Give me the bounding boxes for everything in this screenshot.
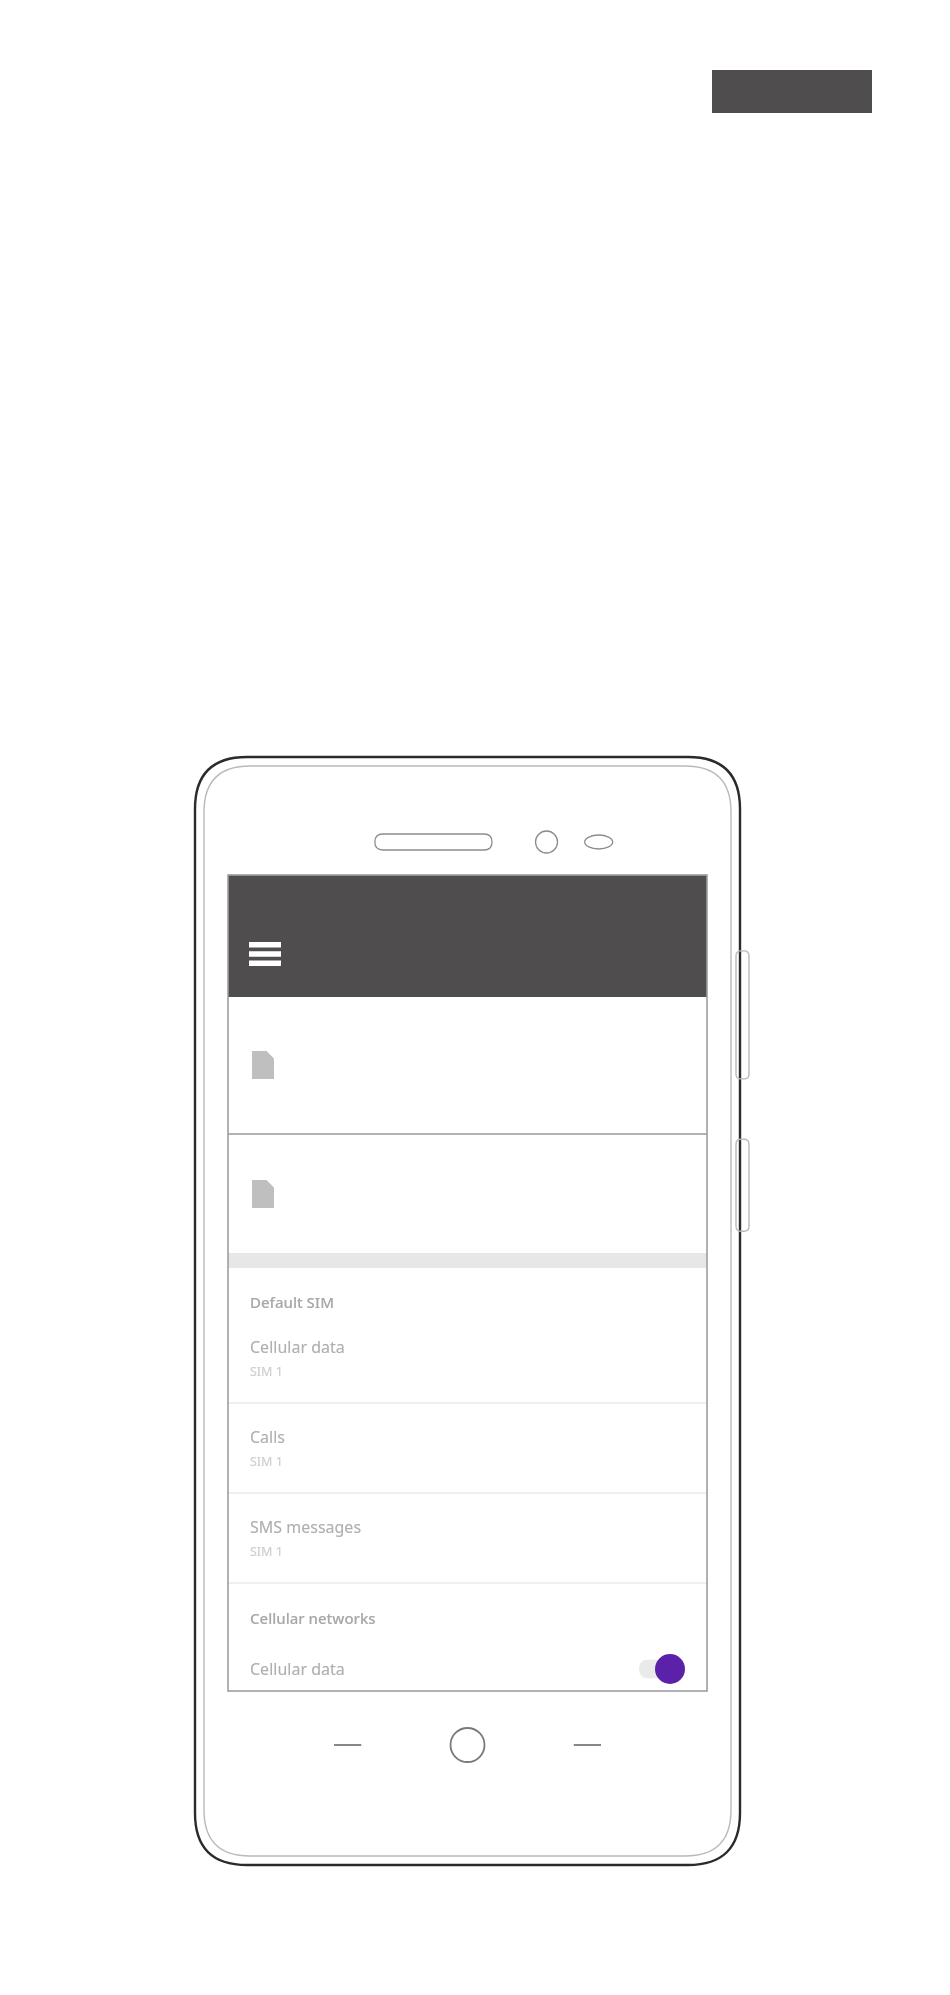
staticText: Cellular networks xyxy=(250,1608,376,1628)
staticText: SIM 1 xyxy=(250,1363,283,1380)
button[interactable]: Cellular data toggle xyxy=(639,1654,685,1684)
staticText: Calls xyxy=(250,1426,286,1448)
button[interactable]: Open navigation menu xyxy=(244,933,286,975)
staticText: SIM 1 xyxy=(250,1453,283,1470)
staticText: Default SIM xyxy=(250,1292,334,1312)
button[interactable]: Cellular data xyxy=(228,1646,707,1691)
button[interactable] xyxy=(228,997,707,1133)
staticText: SMS messages xyxy=(250,1516,362,1538)
staticText: Cellular data xyxy=(250,1336,345,1358)
button[interactable] xyxy=(228,1135,707,1253)
button[interactable]: Default SIM xyxy=(228,1268,707,1402)
button[interactable]: Calls xyxy=(228,1404,707,1492)
staticText: Cellular data xyxy=(250,1658,639,1680)
staticText: SIM 1 xyxy=(250,1543,283,1560)
button[interactable]: SMS messages xyxy=(228,1494,707,1582)
